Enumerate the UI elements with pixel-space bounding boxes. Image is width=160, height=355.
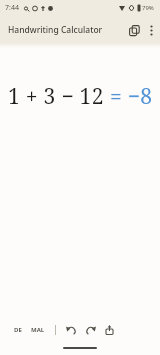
button[interactable]: MAL xyxy=(29,324,47,336)
button[interactable] xyxy=(84,323,98,337)
staticText: = −8 xyxy=(110,82,153,111)
button[interactable] xyxy=(102,323,116,337)
button[interactable] xyxy=(144,23,158,37)
staticText: Handwriting Calculator xyxy=(8,24,103,36)
staticText: 1 + 3 − 12 xyxy=(8,82,110,111)
staticText: DE xyxy=(14,326,22,334)
button[interactable] xyxy=(64,323,78,337)
button[interactable]: DE xyxy=(12,324,24,336)
staticText: 7:44 xyxy=(5,3,19,13)
staticText: 79% xyxy=(142,4,154,12)
staticText: MAL xyxy=(31,326,45,334)
button[interactable] xyxy=(126,22,142,38)
